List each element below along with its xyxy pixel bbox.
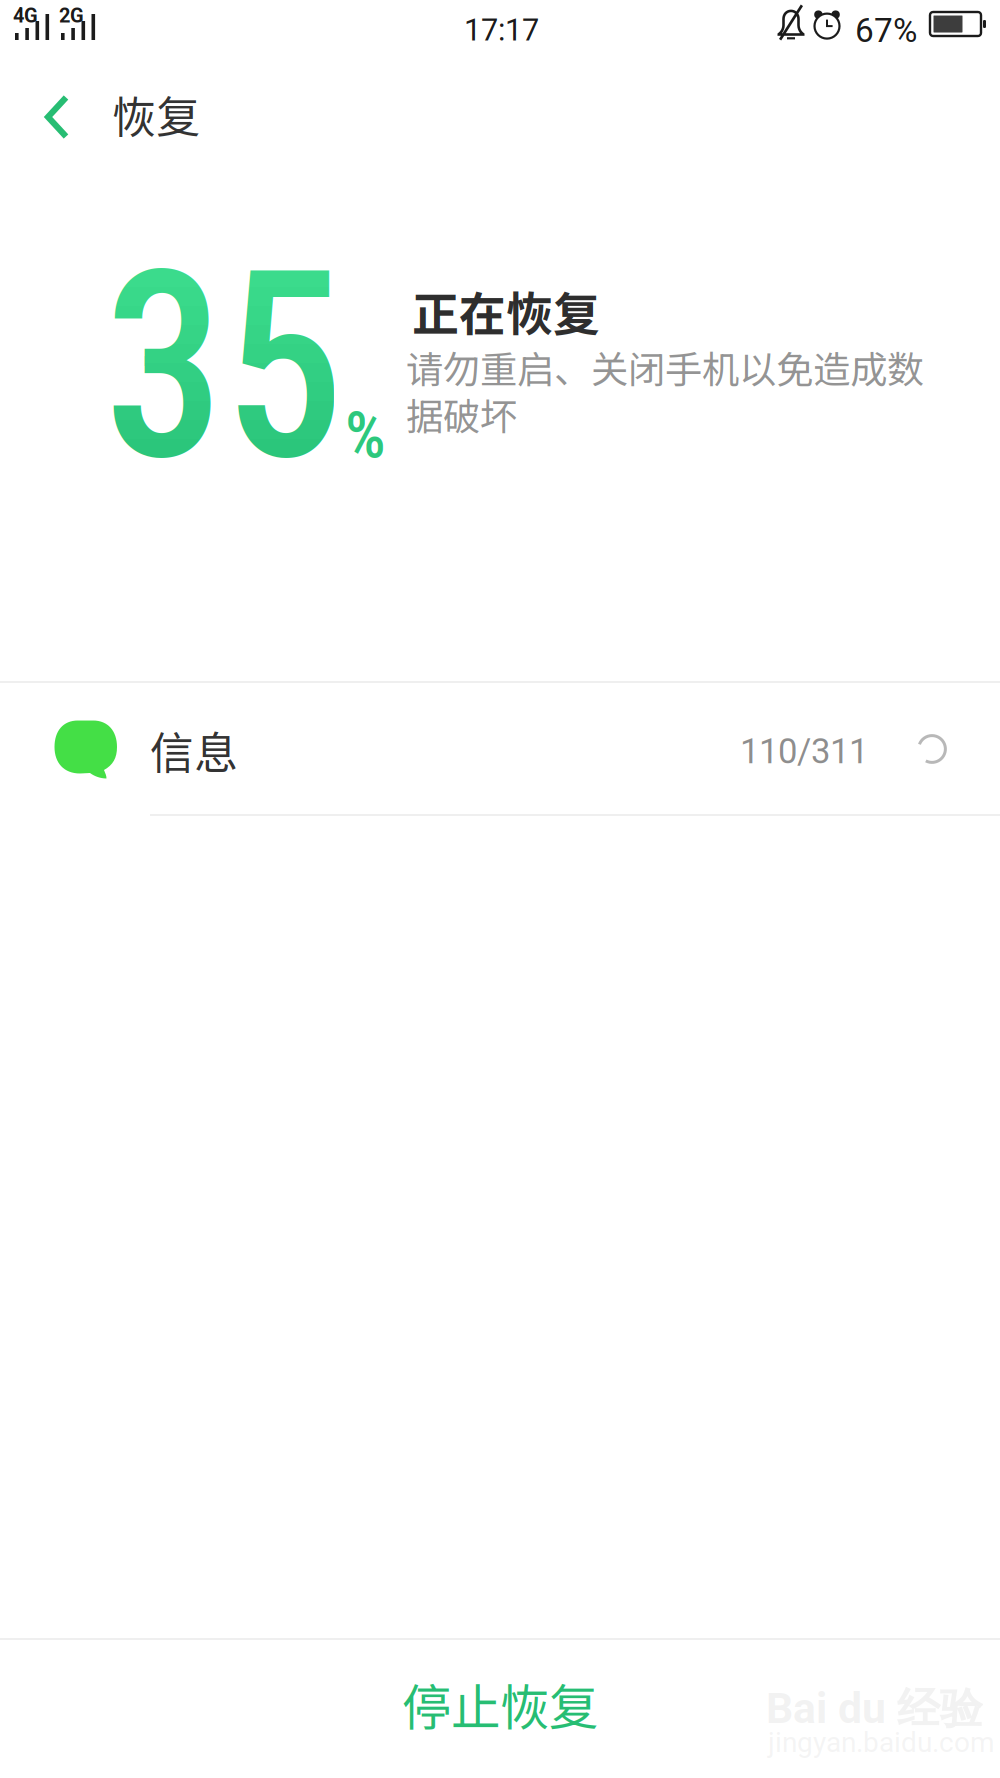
staticText: 2G: [59, 4, 84, 27]
staticText: 35: [104, 213, 462, 632]
staticText: 110/311: [740, 731, 868, 772]
staticText: 请勿重启、关闭手机以免造成数: [406, 340, 924, 394]
button[interactable]: 信息: [0, 683, 1000, 816]
staticText: 35: [104, 213, 462, 632]
staticText: 17:17: [464, 12, 539, 48]
staticText: 据破坏: [406, 387, 517, 441]
staticText: 35: [104, 213, 462, 632]
staticText: 35: [104, 213, 462, 632]
staticText: Bai du 经验: [766, 1682, 983, 1736]
button[interactable]: 返回: [1, 62, 113, 172]
staticText: 35: [104, 213, 462, 632]
staticText: %: [345, 398, 386, 473]
staticText: 4G: [13, 4, 38, 27]
staticText: jingyan.baidu.com: [768, 1726, 995, 1759]
staticText: 35: [104, 213, 462, 632]
staticText: 35: [104, 213, 462, 632]
staticText: 信息: [150, 718, 238, 782]
staticText: 67%: [855, 11, 917, 50]
button[interactable]: 停止恢复: [0, 1634, 1000, 1774]
staticText: 35: [104, 213, 462, 632]
staticText: 35: [104, 213, 462, 632]
staticText: 停止恢复: [402, 1668, 598, 1740]
staticText: 35: [104, 213, 462, 632]
staticText: 正在恢复: [412, 277, 600, 345]
staticText: 恢复: [112, 82, 200, 146]
